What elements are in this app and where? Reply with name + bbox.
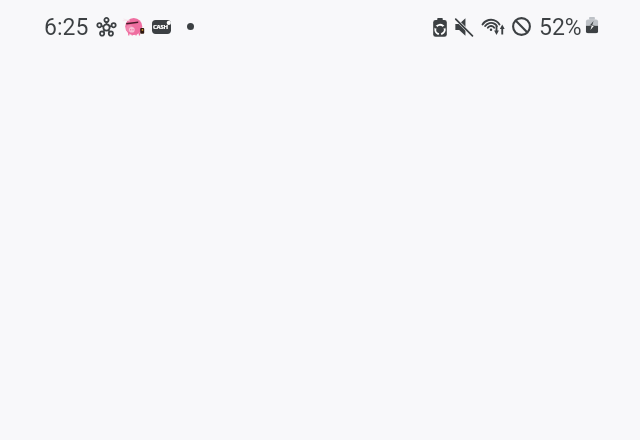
staticText: CASH	[153, 23, 168, 31]
button[interactable]: Quick settings	[432, 0, 612, 53]
button[interactable]: Notifications	[32, 0, 204, 53]
staticText: 52%	[539, 14, 582, 41]
staticText: 6:25	[44, 14, 89, 41]
